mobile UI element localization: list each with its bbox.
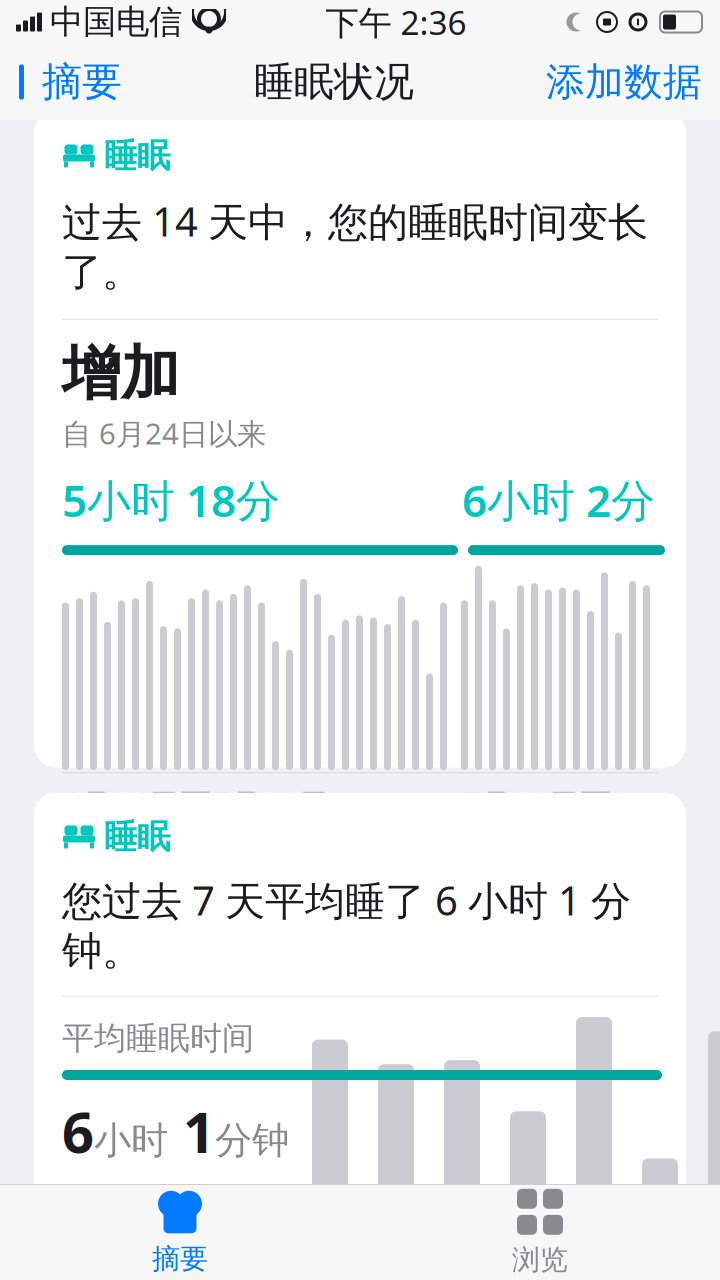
staticText: 您过去 7 天平均睡了 6 小时 1 分钟。: [62, 873, 631, 976]
staticText: 增加: [62, 338, 180, 410]
staticText: 中国电信: [50, 1, 182, 42]
staticText: 分钟: [215, 1117, 289, 1163]
staticText: 6: [62, 1094, 94, 1168]
staticText: 睡眠状况: [254, 57, 414, 106]
button[interactable]: 添加数据: [546, 52, 720, 112]
staticText: 浏览: [512, 1243, 568, 1277]
staticText: 过去 14 天中，您的睡眠时间变长了。: [62, 194, 648, 297]
staticText: 5小时 18分: [62, 471, 280, 529]
button[interactable]: 浏览: [360, 1179, 720, 1280]
staticText: 7月22日至8月4日: [462, 783, 630, 868]
staticText: 摘要: [152, 1242, 208, 1276]
button[interactable]: 摘要: [0, 1180, 360, 1280]
staticText: 自 6月24日以来: [62, 414, 266, 453]
staticText: 添加数据: [546, 58, 702, 106]
staticText: 睡眠: [104, 816, 170, 857]
staticText: 小时: [94, 1117, 168, 1163]
staticText: 6月24日至7月21日: [62, 783, 330, 826]
staticText: 摘要: [42, 57, 122, 106]
staticText: 平均睡眠时间: [62, 1019, 254, 1058]
staticText: 下午 2:36: [325, 0, 466, 44]
button[interactable]: 摘要: [0, 51, 122, 112]
staticText: 1: [168, 1094, 215, 1168]
staticText: 6小时 2分: [462, 471, 655, 529]
staticText: 睡眠: [104, 135, 170, 176]
